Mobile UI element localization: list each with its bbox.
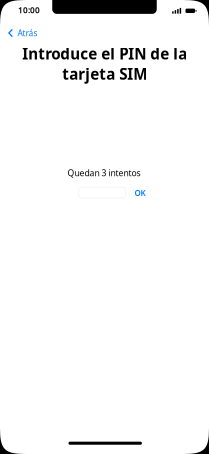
button[interactable]: OK bbox=[128, 183, 151, 203]
button[interactable]: Atrás bbox=[1, 22, 45, 44]
staticText: Quedan 3 intentos bbox=[67, 167, 140, 178]
staticText: OK bbox=[134, 188, 145, 198]
staticText: 10:00 bbox=[18, 5, 40, 16]
staticText: Atrás bbox=[17, 27, 37, 39]
staticText: Introduce el PIN de la tarjeta SIM bbox=[22, 44, 187, 84]
